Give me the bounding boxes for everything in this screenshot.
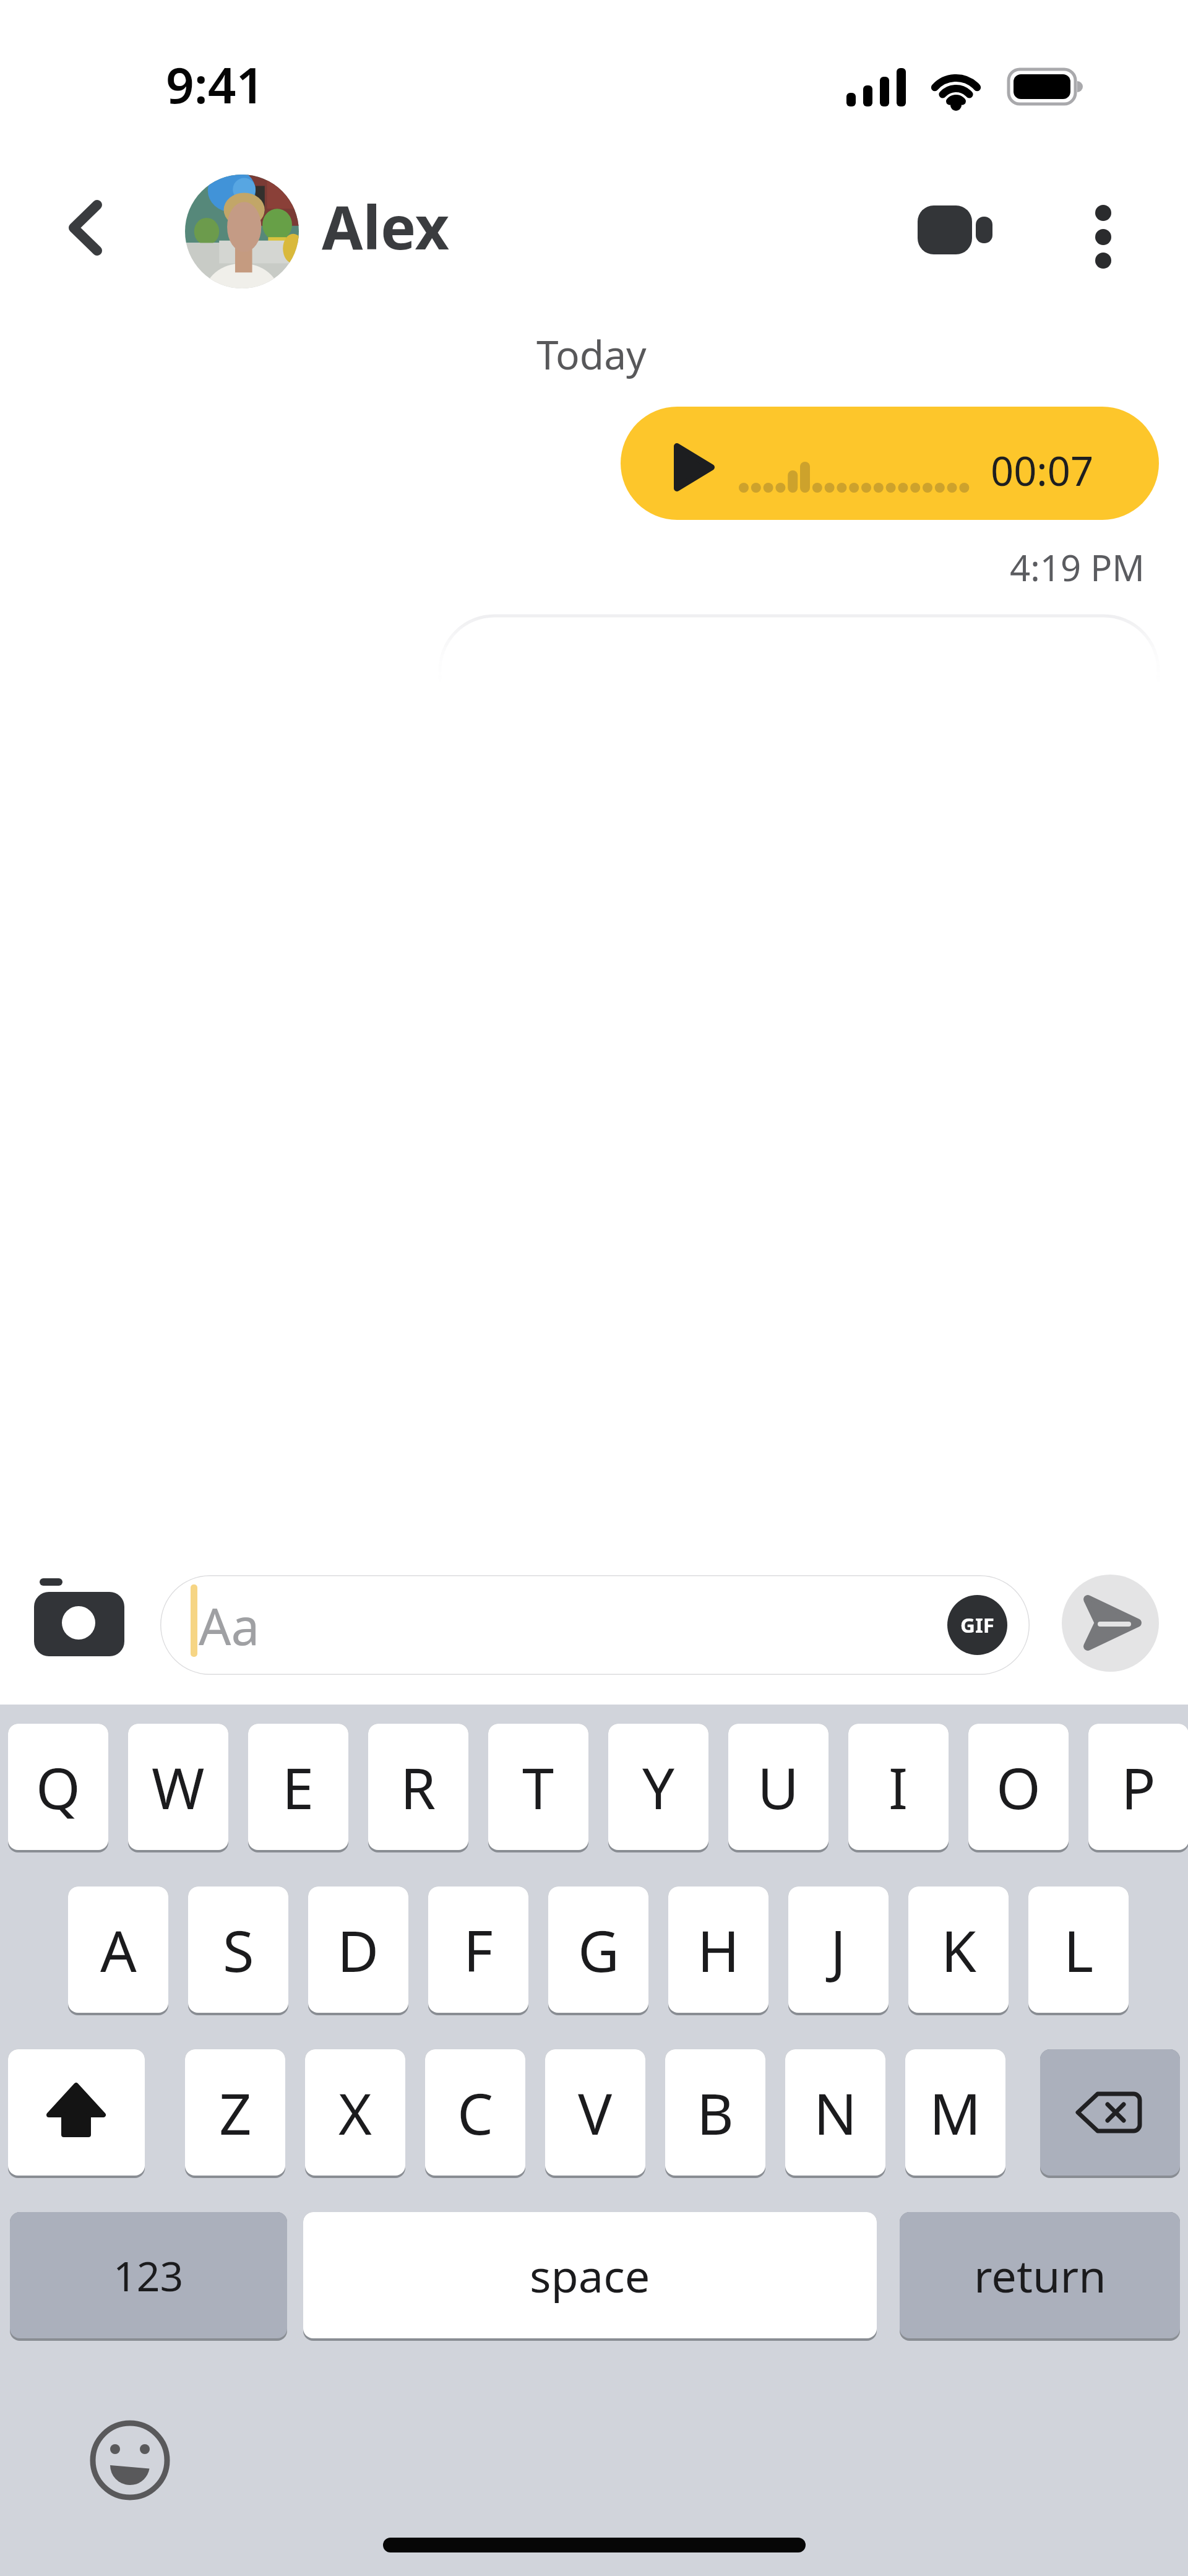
staticText: G: [578, 1911, 619, 1989]
staticText: 4:19 PM: [1010, 543, 1145, 592]
button[interactable]: R: [368, 1724, 468, 1850]
staticText: K: [941, 1911, 976, 1989]
button[interactable]: [59, 195, 121, 263]
staticText: C: [457, 2074, 494, 2151]
staticText: Aa: [199, 1591, 260, 1660]
button[interactable]: 123: [10, 2212, 287, 2338]
button[interactable]: Aa: [160, 1575, 1030, 1675]
staticText: F: [463, 1911, 493, 1989]
button[interactable]: GIF: [947, 1595, 1007, 1655]
staticText: O: [996, 1748, 1041, 1826]
button[interactable]: [87, 2417, 173, 2504]
staticText: B: [697, 2074, 734, 2151]
staticText: X: [338, 2074, 372, 2151]
staticText: GIF: [960, 1611, 994, 1639]
button[interactable]: [8, 2049, 145, 2176]
button[interactable]: Q: [8, 1724, 108, 1850]
staticText: 123: [113, 2247, 184, 2303]
staticText: W: [152, 1748, 205, 1826]
staticText: D: [337, 1911, 379, 1989]
button[interactable]: Z: [185, 2049, 285, 2176]
button[interactable]: space: [303, 2212, 877, 2338]
button[interactable]: B: [665, 2049, 765, 2176]
staticText: I: [889, 1748, 908, 1826]
staticText: Z: [219, 2074, 252, 2151]
button[interactable]: O: [968, 1724, 1069, 1850]
staticText: return: [974, 2245, 1106, 2306]
staticText: Y: [642, 1748, 675, 1826]
button[interactable]: J: [788, 1887, 889, 2013]
button[interactable]: D: [308, 1887, 408, 2013]
staticText: T: [522, 1748, 554, 1826]
button[interactable]: 00:07: [621, 407, 1159, 520]
staticText: space: [530, 2245, 650, 2306]
button[interactable]: L: [1028, 1887, 1129, 2013]
button[interactable]: [1040, 2049, 1180, 2176]
button[interactable]: M: [905, 2049, 1005, 2176]
button[interactable]: X: [305, 2049, 405, 2176]
staticText: R: [400, 1748, 436, 1826]
button[interactable]: U: [728, 1724, 829, 1850]
staticText: P: [1121, 1748, 1156, 1826]
button[interactable]: K: [908, 1887, 1009, 2013]
staticText: Alex: [322, 186, 449, 267]
staticText: H: [697, 1911, 740, 1989]
button[interactable]: H: [668, 1887, 768, 2013]
button[interactable]: F: [428, 1887, 528, 2013]
button[interactable]: S: [188, 1887, 288, 2013]
button[interactable]: [1062, 1575, 1159, 1672]
staticText: Today: [536, 327, 647, 381]
button[interactable]: [185, 175, 299, 288]
button[interactable]: E: [248, 1724, 348, 1850]
button[interactable]: Y: [608, 1724, 708, 1850]
button[interactable]: [19, 1563, 142, 1674]
staticText: Q: [36, 1748, 80, 1826]
button[interactable]: [1070, 195, 1138, 272]
staticText: U: [757, 1748, 799, 1826]
staticText: A: [100, 1911, 137, 1989]
staticText: N: [814, 2074, 857, 2151]
button[interactable]: T: [488, 1724, 588, 1850]
staticText: S: [223, 1911, 254, 1989]
button[interactable]: G: [548, 1887, 648, 2013]
staticText: M: [929, 2074, 981, 2151]
staticText: L: [1064, 1911, 1094, 1989]
button[interactable]: [903, 195, 1009, 266]
button[interactable]: I: [848, 1724, 949, 1850]
button[interactable]: N: [785, 2049, 885, 2176]
button[interactable]: C: [425, 2049, 525, 2176]
button[interactable]: return: [900, 2212, 1180, 2338]
staticText: J: [830, 1911, 846, 1989]
button[interactable]: V: [545, 2049, 645, 2176]
staticText: 9:41: [166, 50, 265, 118]
button[interactable]: A: [68, 1887, 168, 2013]
button[interactable]: P: [1088, 1724, 1188, 1850]
staticText: E: [282, 1748, 314, 1826]
staticText: 00:07: [991, 443, 1094, 498]
button[interactable]: W: [128, 1724, 228, 1850]
staticText: V: [578, 2074, 613, 2151]
